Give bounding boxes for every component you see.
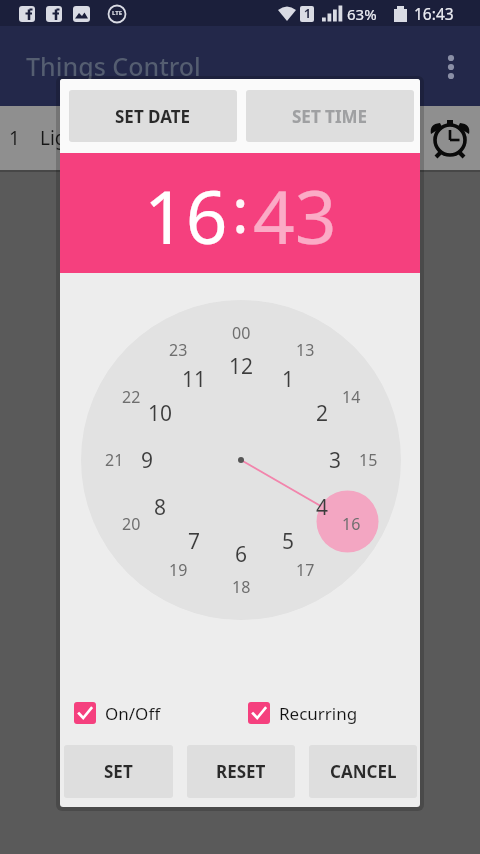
button[interactable]: RESET: [187, 745, 295, 798]
button[interactable]: SET: [64, 745, 173, 798]
staticText: 14: [342, 386, 361, 408]
staticText: 5: [282, 527, 295, 555]
staticText: 12: [229, 352, 254, 380]
staticText: 3: [329, 446, 342, 474]
staticText: 23: [169, 339, 188, 361]
staticText: SET DATE: [115, 105, 191, 128]
staticText: 16: [342, 513, 361, 535]
staticText: Things Control: [26, 49, 201, 83]
staticText: 7: [188, 527, 201, 555]
button[interactable]: [442, 57, 460, 75]
staticText: 16:43: [414, 3, 454, 24]
staticText: 63%: [347, 4, 377, 24]
staticText: 13: [296, 339, 315, 361]
staticText: 16: [144, 166, 228, 265]
button[interactable]: CANCEL: [309, 745, 417, 798]
staticText: On/Off: [105, 702, 161, 725]
staticText: Light: [40, 125, 86, 151]
button[interactable]: Recurring: [248, 700, 358, 726]
staticText: SET: [104, 760, 133, 783]
staticText: 18: [232, 576, 251, 598]
staticText: 8: [154, 493, 167, 521]
staticText: :: [232, 167, 249, 251]
staticText: 19: [169, 559, 188, 581]
staticText: 11: [182, 365, 207, 393]
staticText: CANCEL: [330, 760, 397, 783]
button[interactable]: 1: [0, 106, 480, 170]
staticText: 15: [359, 449, 378, 471]
staticText: 9: [141, 446, 154, 474]
staticText: 00: [232, 322, 251, 344]
staticText: RESET: [216, 760, 266, 783]
button[interactable]: SET TIME: [246, 90, 414, 142]
button[interactable]: SET DATE: [69, 90, 237, 142]
staticText: 22: [122, 386, 141, 408]
button[interactable]: On/Off: [74, 700, 161, 726]
staticText: 17: [296, 559, 315, 581]
staticText: 1: [304, 5, 311, 21]
staticText: 43: [253, 166, 337, 265]
staticText: 4: [316, 493, 329, 521]
staticText: LTE: [112, 9, 123, 17]
staticText: SET TIME: [292, 105, 368, 128]
staticText: 2: [316, 399, 329, 427]
staticText: 20: [122, 513, 141, 535]
staticText: 6: [235, 540, 248, 568]
staticText: 1: [282, 365, 295, 393]
staticText: 21: [105, 449, 124, 471]
staticText: 10: [148, 399, 173, 427]
staticText: 1: [9, 125, 20, 151]
staticText: Recurring: [279, 702, 358, 725]
